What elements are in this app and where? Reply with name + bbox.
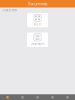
button[interactable]: Shared (30, 94, 45, 100)
staticText: Sheet (33, 23, 41, 26)
button[interactable]: Files (0, 94, 15, 100)
button[interactable]: Search (45, 94, 60, 100)
button[interactable]: Recent (15, 94, 30, 100)
staticText: CREATE NEW (1, 8, 16, 12)
button[interactable]: Document (27, 32, 48, 47)
staticText: Documents (27, 1, 47, 6)
button[interactable]: More (60, 94, 75, 100)
button[interactable]: Sheet (27, 13, 48, 27)
staticText: Document (30, 42, 44, 46)
